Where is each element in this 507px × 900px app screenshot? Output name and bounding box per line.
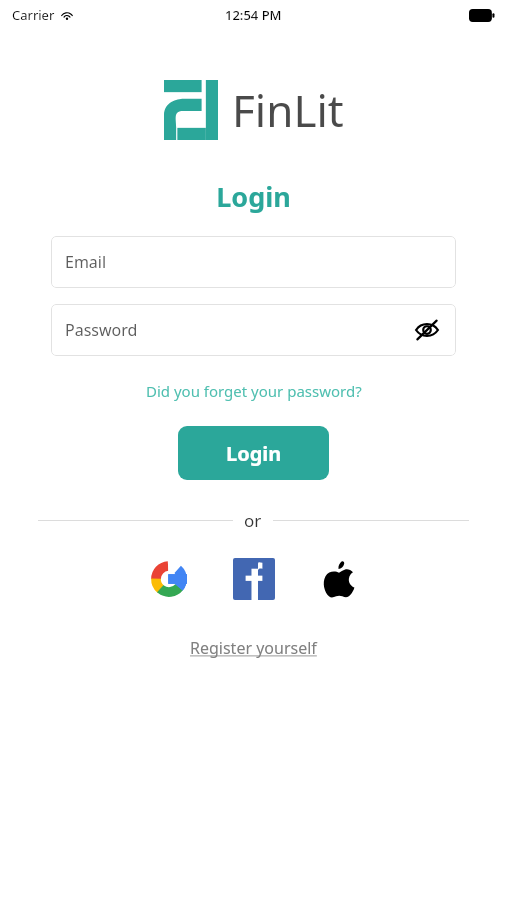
button[interactable]: Sign in with Apple	[312, 552, 366, 606]
staticText: 12:54 PM	[225, 6, 282, 24]
button[interactable]: Show password	[412, 315, 442, 345]
staticText: Did you forget your password?	[146, 381, 362, 401]
button[interactable]: Sign in with Facebook	[227, 552, 281, 606]
staticText: FinLit	[232, 80, 344, 140]
button[interactable]: Login	[178, 426, 329, 480]
staticText: or	[244, 509, 262, 532]
button[interactable]: Did you forget your password?	[138, 378, 370, 404]
button[interactable]: Email	[51, 236, 456, 288]
staticText: Register yourself	[190, 637, 317, 659]
staticText: Carrier	[12, 6, 55, 24]
button[interactable]: Sign in with Google	[142, 552, 196, 606]
button[interactable]: Register yourself	[182, 634, 325, 662]
staticText: Login	[0, 178, 507, 215]
staticText: Email	[65, 251, 442, 273]
button[interactable]: Password	[51, 304, 456, 356]
staticText: Password	[65, 319, 412, 341]
staticText: Login	[226, 440, 282, 467]
